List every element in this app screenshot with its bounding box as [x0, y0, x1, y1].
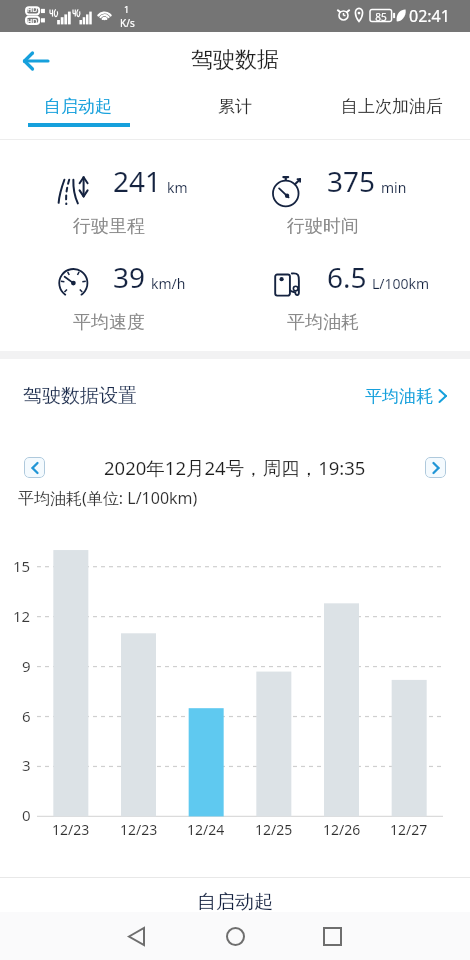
button[interactable]: Back: [116, 916, 156, 956]
button[interactable]: 自上次加油后: [313, 88, 470, 136]
staticText: 15: [13, 556, 31, 576]
staticText: 12: [13, 606, 31, 626]
staticText: 累计: [218, 96, 252, 117]
button[interactable]: 自启动起: [0, 878, 470, 912]
staticText: K/s: [120, 16, 135, 30]
button[interactable]: Home: [215, 916, 255, 956]
staticText: 驾驶数据: [191, 46, 279, 74]
button[interactable]: 自启动起: [0, 88, 156, 136]
staticText: 行驶里程: [73, 215, 145, 238]
staticText: 241: [113, 162, 162, 200]
staticText: 平均油耗: [365, 386, 433, 407]
staticText: 平均速度: [73, 311, 145, 334]
staticText: 平均油耗: [287, 311, 359, 334]
staticText: 3: [22, 755, 31, 775]
staticText: 12/24: [187, 820, 225, 839]
staticText: 12/25: [255, 820, 293, 839]
staticText: 自启动起: [44, 96, 112, 117]
button[interactable]: Recents: [312, 916, 352, 956]
staticText: 行驶时间: [287, 215, 359, 238]
staticText: 02:41: [409, 5, 450, 27]
staticText: 85: [373, 10, 389, 24]
button[interactable]: Previous day: [24, 457, 45, 478]
staticText: 驾驶数据设置: [23, 384, 137, 408]
staticText: 39: [113, 258, 146, 296]
staticText: 6: [22, 706, 31, 726]
staticText: 0: [22, 805, 31, 825]
staticText: HD: [27, 17, 38, 27]
staticText: 平均油耗(单位: L/100km): [18, 487, 198, 509]
staticText: 12/26: [323, 820, 361, 839]
staticText: 自上次加油后: [341, 96, 443, 117]
staticText: 375: [327, 162, 376, 200]
staticText: HD: [27, 5, 38, 15]
staticText: 2020年12月24号，周四，19:35: [104, 455, 366, 480]
button[interactable]: Next day: [425, 457, 446, 478]
staticText: 12/23: [120, 820, 158, 839]
staticText: km/h: [151, 274, 186, 293]
staticText: 12/27: [390, 820, 428, 839]
staticText: L/100km: [372, 274, 430, 293]
button[interactable]: Back: [13, 38, 59, 82]
staticText: km: [167, 178, 188, 197]
staticText: 自启动起: [197, 890, 273, 914]
staticText: 1: [124, 3, 130, 15]
staticText: 9: [22, 656, 31, 676]
staticText: 12/23: [52, 820, 90, 839]
button[interactable]: 累计: [156, 88, 313, 136]
button[interactable]: 驾驶数据设置: [0, 366, 470, 426]
staticText: min: [381, 178, 407, 197]
staticText: 6.5: [327, 258, 367, 296]
